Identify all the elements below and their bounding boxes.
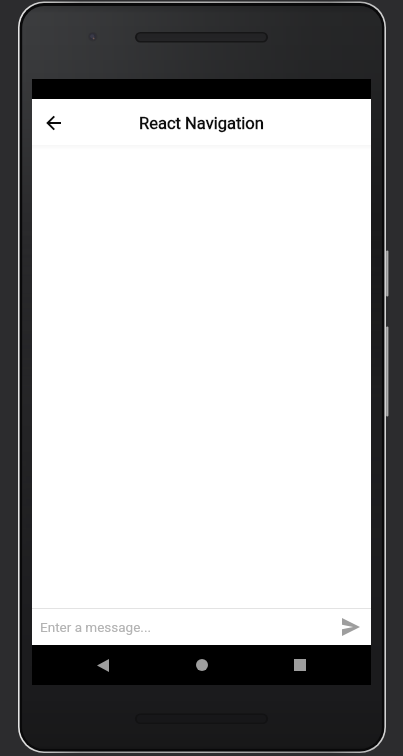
button[interactable]: Recents (280, 645, 320, 685)
button[interactable]: Send (337, 613, 365, 641)
staticText: React Navigation (139, 114, 264, 133)
button[interactable]: Home (182, 645, 222, 685)
button[interactable]: Back (32, 101, 75, 144)
button[interactable]: Back (83, 645, 123, 685)
staticText: Enter a message... (40, 619, 337, 635)
